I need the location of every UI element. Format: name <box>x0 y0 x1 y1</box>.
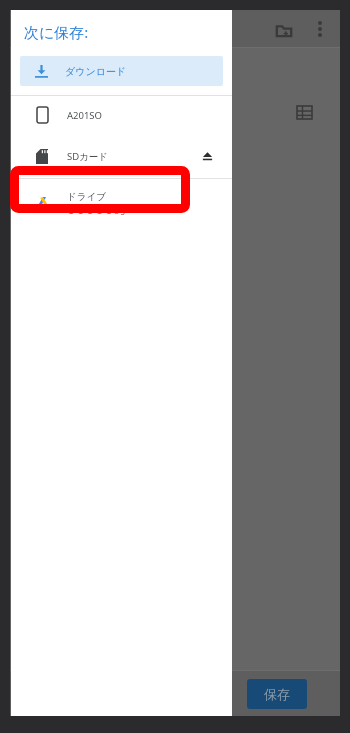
staticText: ドライブ <box>67 191 106 203</box>
button[interactable]: Eject SD card <box>196 145 218 167</box>
button[interactable]: 保存 <box>247 679 307 709</box>
button[interactable]: SDカード <box>11 134 232 178</box>
button[interactable]: ドライブ <box>11 179 232 227</box>
button[interactable]: List view <box>292 100 316 124</box>
staticText: ダウンロード <box>65 65 127 78</box>
staticText: 次に保存: <box>24 22 89 42</box>
button[interactable]: More options <box>309 18 331 40</box>
button[interactable]: New folder <box>272 18 296 42</box>
staticText: @gmail.com <box>113 204 160 215</box>
staticText: A201SO <box>67 109 103 122</box>
button[interactable]: ダウンロード <box>20 56 223 86</box>
staticText: SDカード <box>67 150 109 163</box>
button[interactable]: A201SO <box>11 96 232 134</box>
staticText: 保存 <box>264 686 290 702</box>
